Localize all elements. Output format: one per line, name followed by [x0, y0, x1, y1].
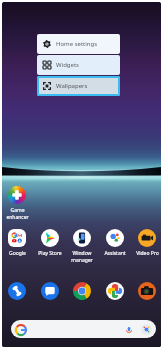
button[interactable]: Wallpapers: [37, 76, 120, 96]
staticText: Game enhancer: [6, 207, 29, 220]
button[interactable]: Chrome: [69, 280, 95, 302]
staticText: Google: [9, 250, 26, 257]
button[interactable]: Messages: [37, 280, 63, 302]
staticText: Widgets: [56, 61, 79, 69]
button[interactable]: Play Store: [34, 227, 66, 257]
button[interactable]: Window manager: [66, 227, 98, 263]
button[interactable]: Widgets: [37, 55, 120, 75]
staticText: Assistant: [104, 250, 126, 257]
button[interactable]: Google: [2, 227, 33, 257]
staticText: Wallpapers: [56, 82, 88, 90]
staticText: Play Store: [38, 250, 62, 257]
staticText: Home settings: [56, 40, 98, 48]
button[interactable]: Home settings: [37, 34, 120, 54]
staticText: Window manager: [71, 250, 93, 263]
button[interactable]: Game enhancer: [2, 184, 33, 220]
staticText: Video Pro: [136, 250, 159, 257]
button[interactable]: Camera: [134, 280, 160, 302]
button[interactable]: [11, 320, 156, 338]
button[interactable]: Assistant: [99, 227, 131, 257]
button[interactable]: Phone: [4, 280, 30, 302]
button[interactable]: Photos: [102, 280, 128, 302]
button[interactable]: Video Pro: [131, 227, 161, 257]
